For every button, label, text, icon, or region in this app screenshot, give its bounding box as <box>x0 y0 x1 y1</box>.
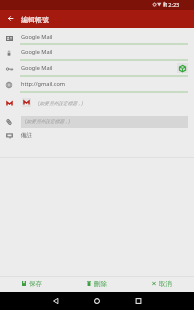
staticText: 刪除 <box>94 280 107 288</box>
staticText: 編輯帳號 <box>21 15 49 24</box>
button[interactable]: Google Mail <box>0 30 194 46</box>
staticText: Google Mail <box>21 64 53 72</box>
staticText: 保存 <box>29 280 42 288</box>
staticText: (如要另外設定標題，) <box>38 100 83 106</box>
button[interactable]: Back <box>0 292 64 310</box>
staticText: http://gmail.com <box>21 80 66 88</box>
staticText: (如要另外設定標題，) <box>25 118 70 124</box>
button[interactable]: Back <box>0 10 21 28</box>
button[interactable]: 保存 <box>0 276 64 291</box>
button[interactable]: http://gmail.com <box>0 77 194 93</box>
button[interactable]: Choose app <box>177 63 188 73</box>
button[interactable]: 取消 <box>129 276 194 291</box>
staticText: 12:23 <box>165 1 180 9</box>
button[interactable]: Google Mail <box>0 45 194 61</box>
staticText: Google Mail <box>21 33 53 41</box>
button[interactable]: Google Mail <box>0 61 194 77</box>
button[interactable]: 刪除 <box>64 276 129 291</box>
staticText: 取消 <box>159 280 172 288</box>
staticText: Google Mail <box>21 48 53 56</box>
button[interactable]: (如要另外設定標題，) <box>0 95 194 111</box>
button[interactable]: 備註 <box>0 128 194 144</box>
staticText: 備註 <box>21 132 33 139</box>
button[interactable]: Home <box>64 292 129 310</box>
button[interactable]: (如要另外設定標題，) <box>0 114 194 130</box>
button[interactable]: Recent apps <box>129 292 194 310</box>
